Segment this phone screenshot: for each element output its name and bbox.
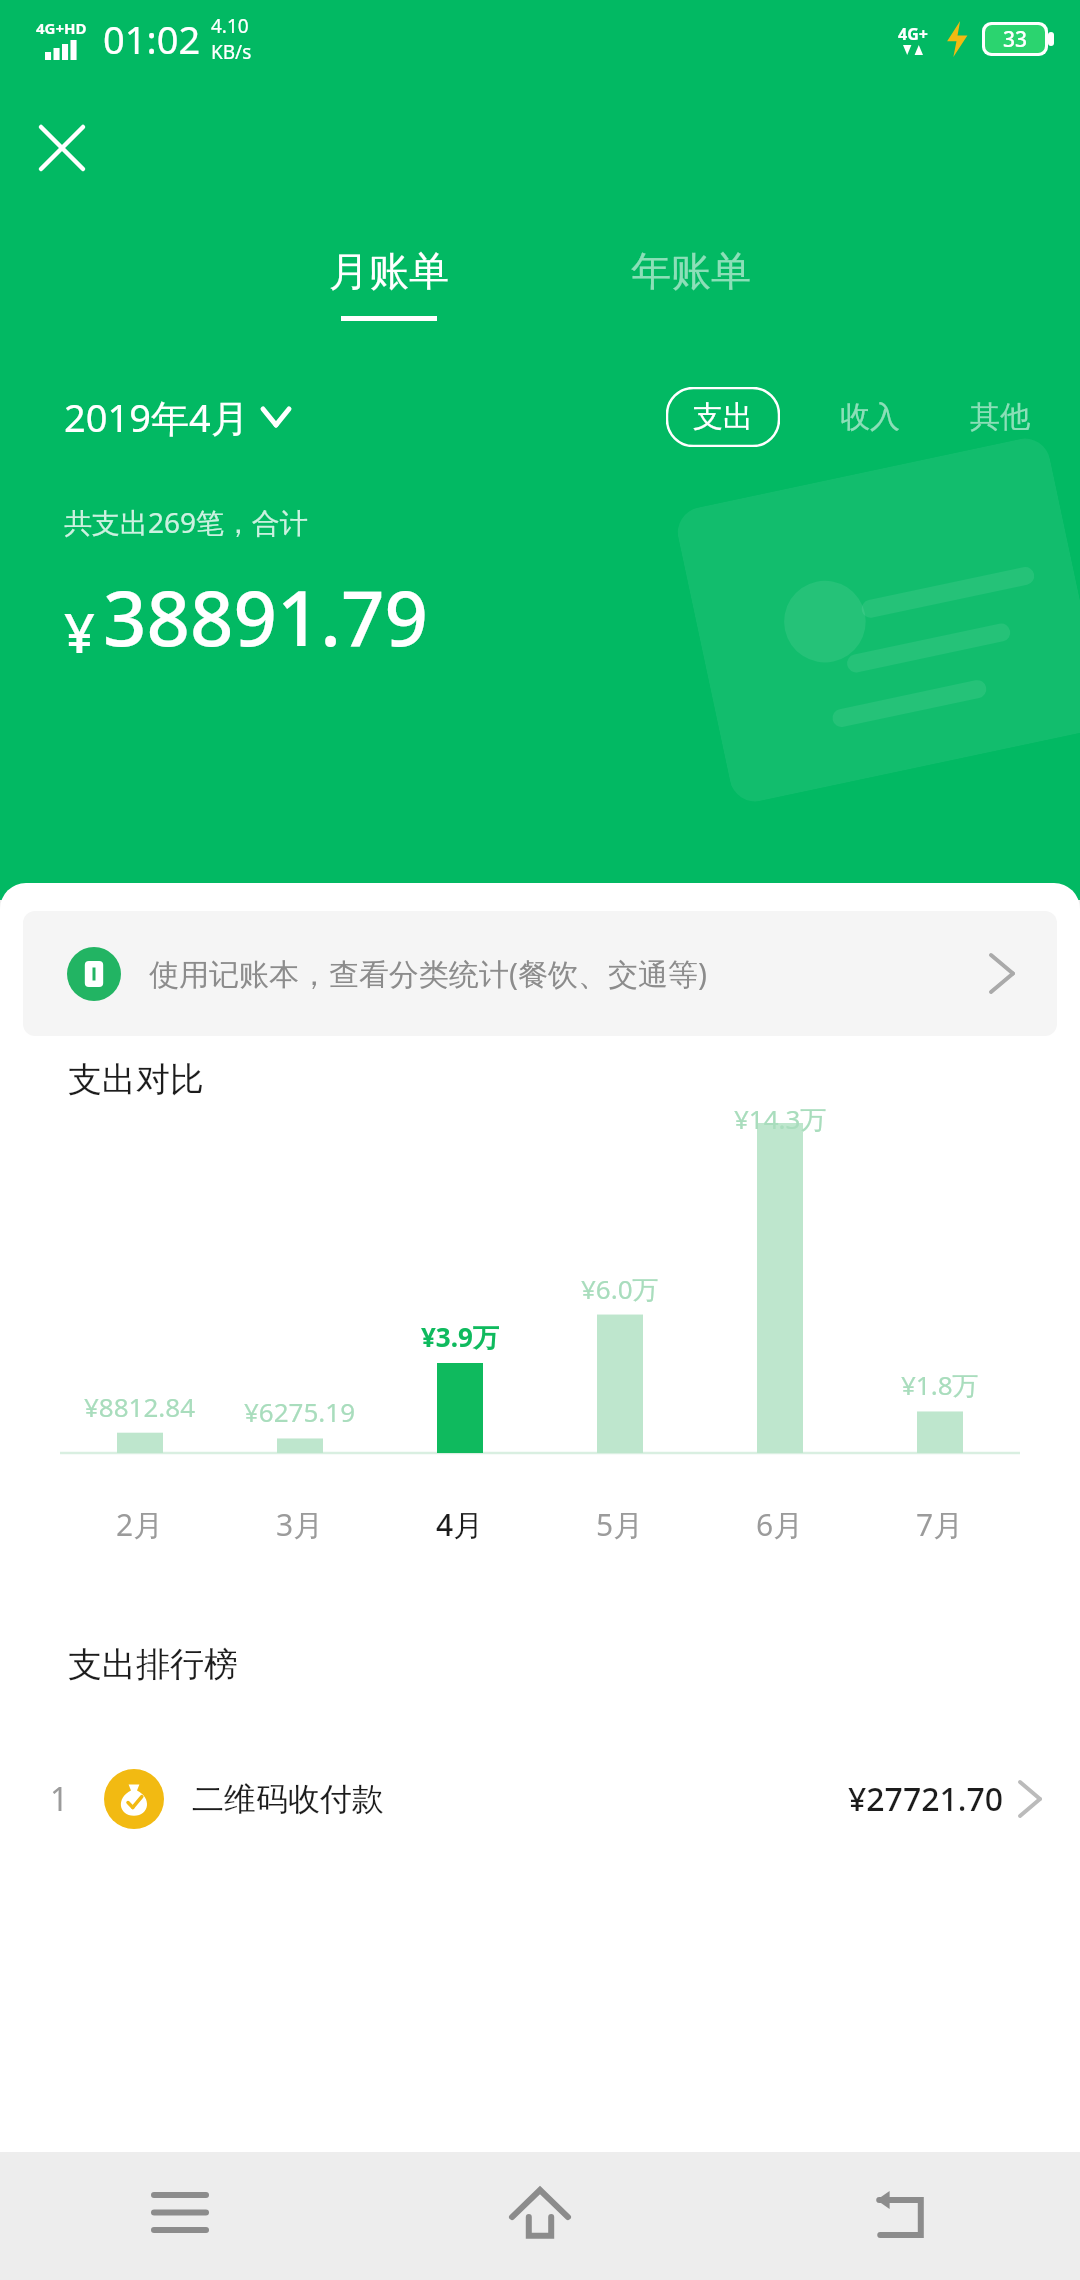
- staticText: 2月: [116, 1504, 164, 1545]
- button[interactable]: 2019年4月: [64, 391, 289, 443]
- staticText: ¥27721.70: [848, 1777, 1004, 1821]
- staticText: 月账单: [329, 246, 449, 296]
- staticText: 支出: [693, 398, 753, 436]
- staticText: 二维码收付款: [192, 1779, 384, 1819]
- staticText: 共支出269笔，合计: [64, 503, 309, 541]
- staticText: 收入: [840, 398, 900, 436]
- staticText: 支出对比: [68, 1058, 204, 1101]
- staticText: KB/s: [211, 39, 252, 65]
- staticText: 38891.79: [103, 565, 428, 669]
- staticText: 2019年4月: [64, 391, 249, 443]
- staticText: 1: [50, 1777, 104, 1821]
- staticText: 支出排行榜: [68, 1643, 238, 1686]
- staticText: ¥14.3万: [734, 1101, 827, 1137]
- button[interactable]: 月账单: [303, 238, 475, 329]
- staticText: 年账单: [631, 246, 751, 296]
- staticText: 4.10: [211, 13, 249, 39]
- staticText: 01:02: [103, 13, 201, 65]
- staticText: ¥3.9万: [421, 1319, 499, 1355]
- button[interactable]: Back: [720, 2152, 1080, 2280]
- staticText: ¥8812.84: [84, 1389, 196, 1424]
- staticText: 4月: [436, 1504, 484, 1545]
- staticText: ¥6275.19: [244, 1394, 356, 1429]
- button[interactable]: Close: [22, 108, 102, 188]
- staticText: ¥1.8万: [901, 1367, 979, 1403]
- button[interactable]: 其他: [960, 388, 1040, 446]
- staticText: 其他: [970, 398, 1030, 436]
- staticText: 33: [1003, 25, 1028, 53]
- button[interactable]: 1: [0, 1744, 1080, 1854]
- staticText: 4G+: [898, 23, 928, 45]
- staticText: 5月: [596, 1504, 644, 1545]
- button[interactable]: 收入: [830, 388, 910, 446]
- button[interactable]: 年账单: [605, 238, 777, 329]
- button[interactable]: 支出: [666, 387, 780, 447]
- staticText: 4G+HD: [36, 18, 87, 38]
- staticText: 6月: [756, 1504, 804, 1545]
- staticText: ¥: [64, 595, 95, 669]
- staticText: 3月: [276, 1504, 324, 1545]
- staticText: ¥6.0万: [581, 1271, 659, 1307]
- button[interactable]: Home: [360, 2152, 720, 2280]
- button[interactable]: Recent apps: [0, 2152, 360, 2280]
- button[interactable]: 使用记账本，查看分类统计(餐饮、交通等): [23, 911, 1057, 1036]
- staticText: 使用记账本，查看分类统计(餐饮、交通等): [149, 953, 707, 994]
- staticText: 7月: [916, 1504, 964, 1545]
